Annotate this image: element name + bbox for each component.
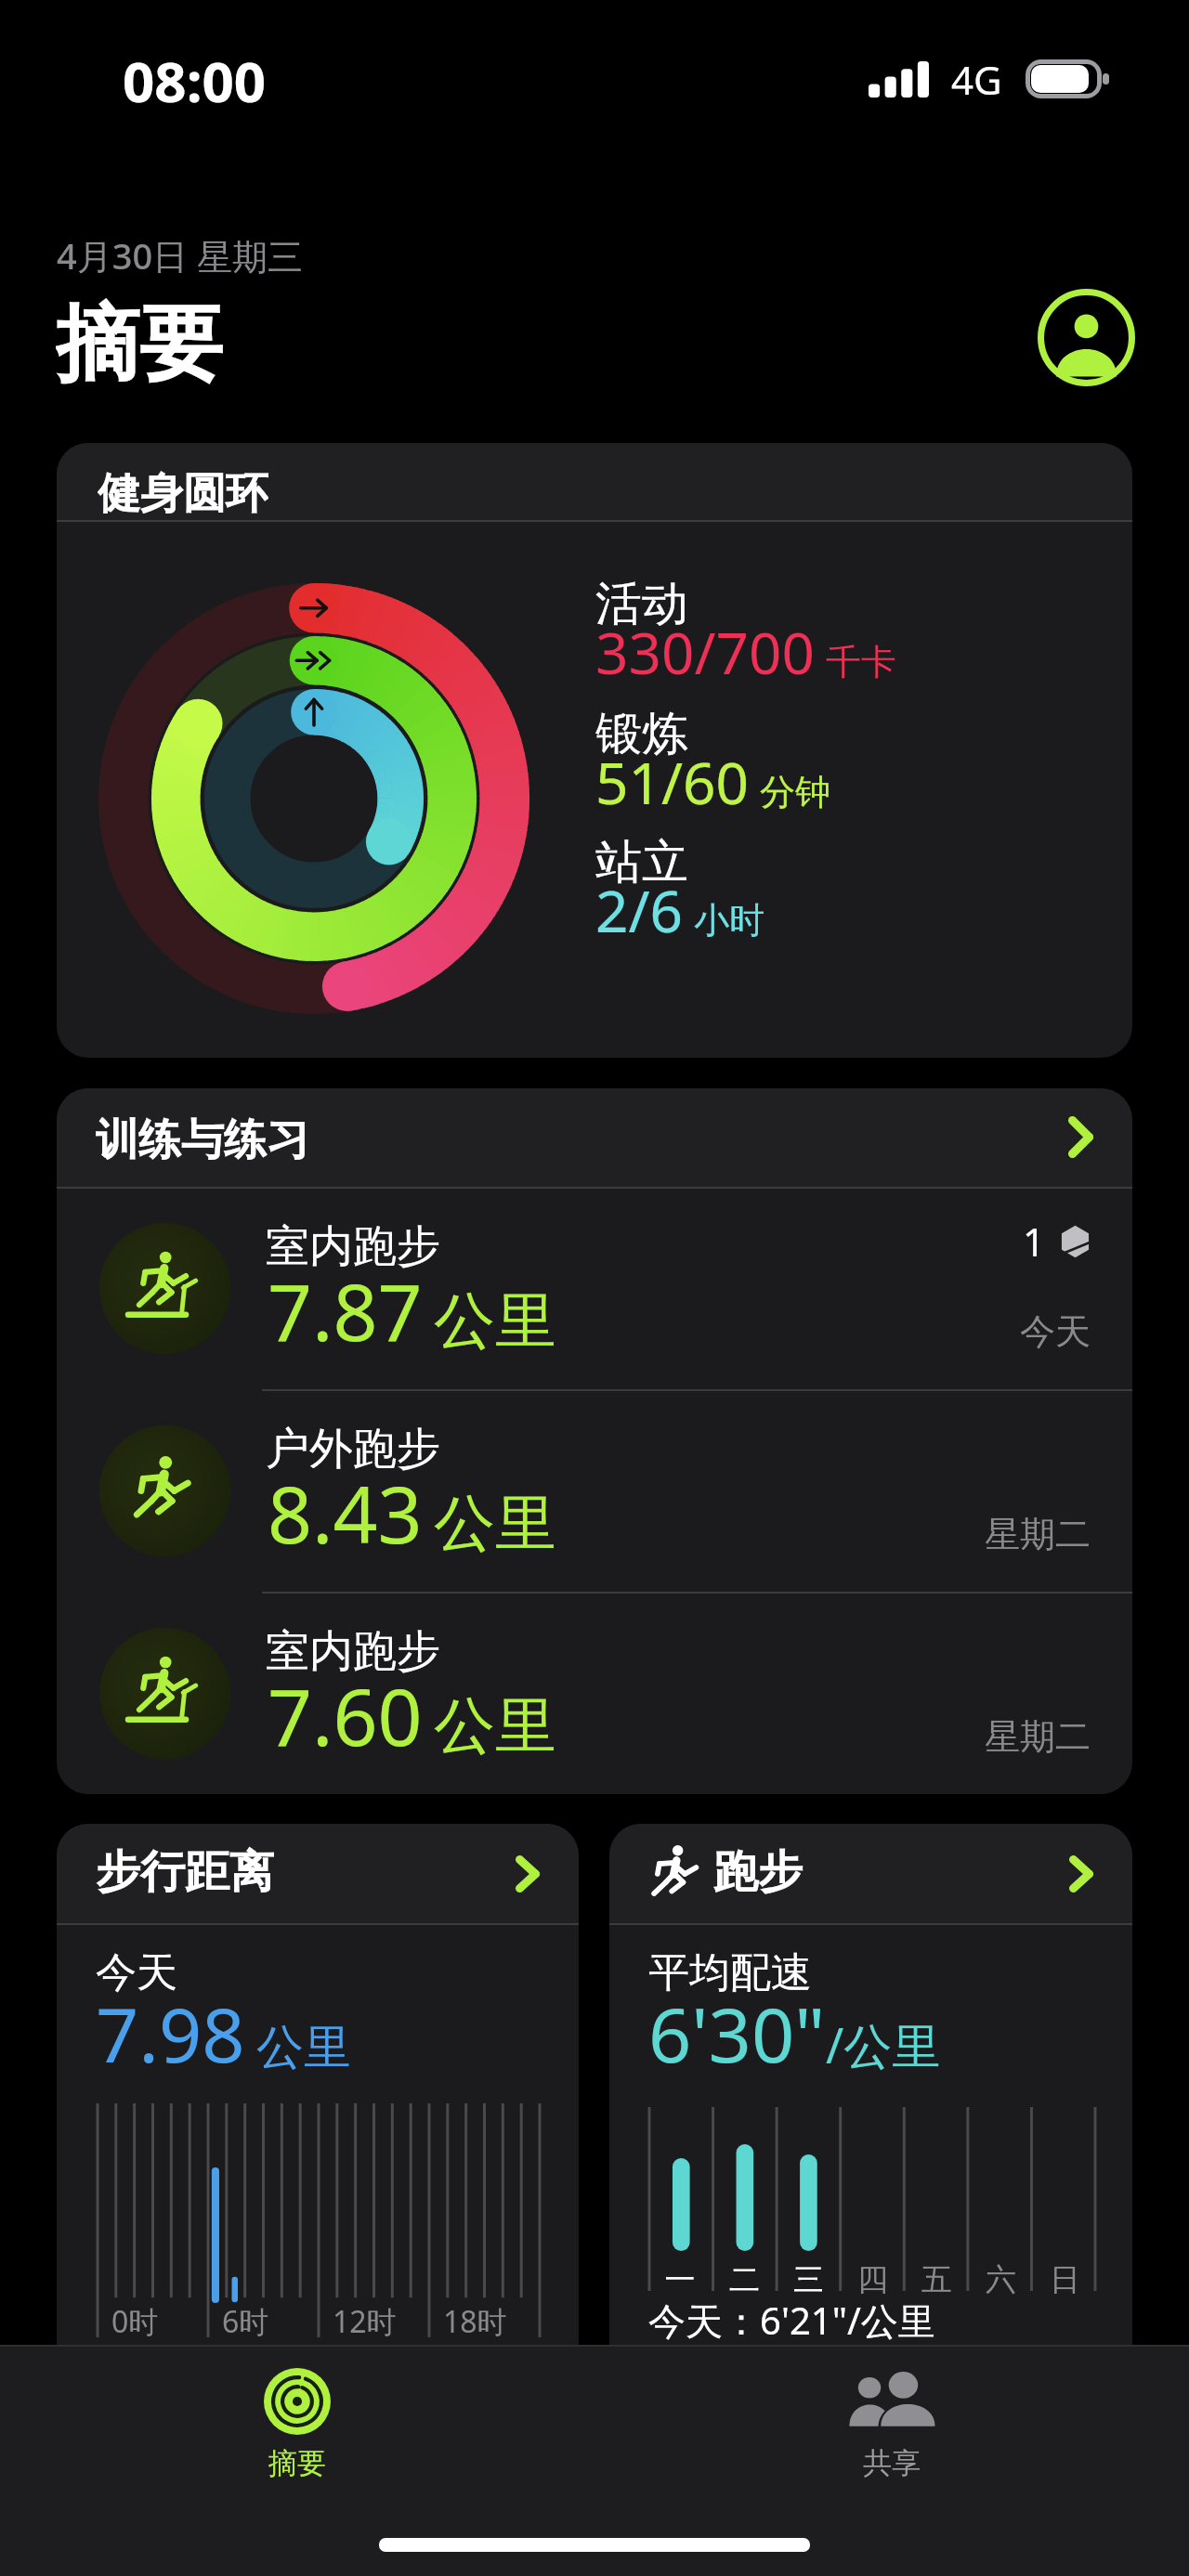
staticText: /公里 bbox=[826, 2011, 941, 2077]
staticText: 公里 bbox=[434, 1687, 556, 1764]
button[interactable]: 步行距离 bbox=[57, 1824, 579, 1923]
staticText: 健身圆环 bbox=[98, 467, 268, 520]
staticText: 活动 bbox=[595, 575, 688, 633]
button[interactable]: 室内跑步 bbox=[57, 1189, 1132, 1389]
staticText: 今天 bbox=[1020, 1309, 1091, 1354]
staticText: 1 bbox=[1023, 1215, 1046, 1268]
staticText: 330/700 bbox=[595, 613, 815, 691]
staticText: 星期二 bbox=[985, 1714, 1091, 1759]
button[interactable]: 健身圆环 bbox=[57, 443, 1132, 1058]
staticText: 6'30" bbox=[648, 1982, 826, 2084]
staticText: 公里 bbox=[434, 1485, 556, 1562]
staticText: 六 bbox=[969, 2260, 1033, 2299]
staticText: 4月30日 星期三 bbox=[57, 231, 304, 280]
staticText: 跑步 bbox=[713, 1844, 803, 1900]
button[interactable]: 训练与练习 bbox=[57, 1088, 1132, 1187]
staticText: 51/60 bbox=[595, 743, 749, 821]
staticText: 训练与练习 bbox=[96, 1113, 309, 1167]
button[interactable]: 跑步 bbox=[609, 1824, 1132, 1923]
staticText: 四 bbox=[841, 2260, 905, 2299]
staticText: 0时 bbox=[111, 2301, 206, 2342]
button[interactable]: 共享 bbox=[594, 2347, 1189, 2576]
staticText: 8.43 bbox=[268, 1460, 423, 1566]
staticText: 分钟 bbox=[760, 770, 830, 814]
staticText: 二 bbox=[712, 2260, 777, 2299]
staticText: 室内跑步 bbox=[266, 1624, 440, 1679]
staticText: 18时 bbox=[443, 2301, 538, 2342]
staticText: 今天 bbox=[96, 1947, 177, 1998]
staticText: 公里 bbox=[256, 2018, 351, 2077]
staticText: 步行距离 bbox=[96, 1844, 274, 1900]
staticText: 户外跑步 bbox=[266, 1422, 440, 1477]
staticText: 日 bbox=[1033, 2260, 1097, 2299]
staticText: 公里 bbox=[434, 1282, 556, 1360]
staticText: 2/6 bbox=[595, 871, 683, 949]
button[interactable]: 室内跑步 bbox=[57, 1594, 1132, 1794]
button[interactable]: 户外跑步 bbox=[57, 1391, 1132, 1592]
staticText: 锻炼 bbox=[595, 705, 688, 763]
staticText: 12时 bbox=[333, 2301, 427, 2342]
staticText: 千卡 bbox=[826, 640, 896, 684]
staticText: 一 bbox=[647, 2260, 712, 2299]
staticText: 小时 bbox=[694, 898, 764, 943]
staticText: 站立 bbox=[595, 833, 688, 891]
staticText: 08:00 bbox=[123, 43, 267, 119]
staticText: 星期二 bbox=[985, 1512, 1091, 1556]
staticText: 今天：6'21"/公里 bbox=[648, 2295, 935, 2346]
staticText: 摘要 bbox=[268, 2445, 326, 2481]
staticText: 7.98 bbox=[96, 1982, 245, 2084]
staticText: 7.60 bbox=[268, 1662, 423, 1768]
staticText: 共享 bbox=[863, 2445, 921, 2481]
staticText: 4G bbox=[951, 53, 1002, 106]
staticText: 摘要 bbox=[56, 292, 223, 390]
button[interactable]: Profile bbox=[1038, 289, 1135, 386]
button[interactable]: 摘要 bbox=[0, 2347, 594, 2576]
staticText: 7.87 bbox=[268, 1257, 423, 1363]
staticText: 6时 bbox=[222, 2301, 317, 2342]
staticText: 室内跑步 bbox=[266, 1219, 440, 1274]
staticText: 平均配速 bbox=[648, 1947, 812, 1998]
staticText: 三 bbox=[777, 2260, 841, 2299]
staticText: 五 bbox=[905, 2260, 969, 2299]
